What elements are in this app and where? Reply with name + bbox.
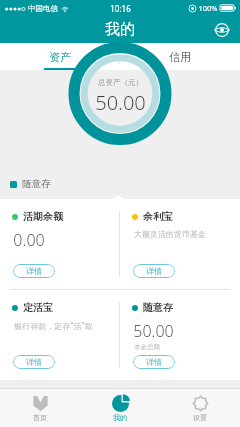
button[interactable]: 我的 xyxy=(80,389,160,427)
button[interactable]: 详情 xyxy=(133,264,175,278)
staticText: 详情 xyxy=(26,266,42,276)
button[interactable]: 设置 xyxy=(160,389,240,427)
button[interactable]: 资产 xyxy=(0,43,119,70)
staticText: 50.00 xyxy=(95,89,146,116)
staticText: 50.00 xyxy=(133,320,174,342)
staticText: 首页 xyxy=(33,413,47,422)
staticText: 随意存 xyxy=(143,301,173,314)
staticText: 定活宝 xyxy=(23,301,53,314)
button[interactable]: 首页 xyxy=(0,389,80,427)
staticText: 100% xyxy=(198,3,218,13)
button[interactable]: Toggle visibility xyxy=(212,20,232,40)
button[interactable]: 详情 xyxy=(133,355,175,369)
staticText: 中国电信 xyxy=(28,4,58,13)
staticText: 大额灵活的货币基金 xyxy=(134,229,206,239)
staticText: 银行存款，定存"活"取 xyxy=(14,320,93,331)
button[interactable]: 随意存 xyxy=(120,290,240,380)
button[interactable]: 详情 xyxy=(13,264,55,278)
staticText: 余利宝 xyxy=(143,210,173,223)
staticText: 我的 xyxy=(113,413,127,422)
button[interactable]: 信用 xyxy=(120,43,240,70)
staticText: 活期余额 xyxy=(23,210,63,223)
staticText: 详情 xyxy=(146,266,162,276)
staticText: 设置 xyxy=(193,413,207,422)
button[interactable]: 活期余额 xyxy=(0,199,119,289)
staticText: 信用 xyxy=(169,50,191,64)
button[interactable]: 定活宝 xyxy=(0,290,119,380)
staticText: 我的 xyxy=(105,20,135,39)
staticText: 总资产（元） xyxy=(98,78,143,87)
staticText: 详情 xyxy=(146,357,162,367)
button[interactable]: 详情 xyxy=(13,355,55,369)
staticText: 资产 xyxy=(49,50,71,64)
staticText: 随意存 xyxy=(22,178,51,190)
staticText: 0.00 xyxy=(13,229,45,251)
staticText: 本金总额 xyxy=(134,343,160,351)
staticText: 10:16 xyxy=(110,3,131,14)
staticText: 详情 xyxy=(26,357,42,367)
button[interactable]: 余利宝 xyxy=(120,199,240,289)
